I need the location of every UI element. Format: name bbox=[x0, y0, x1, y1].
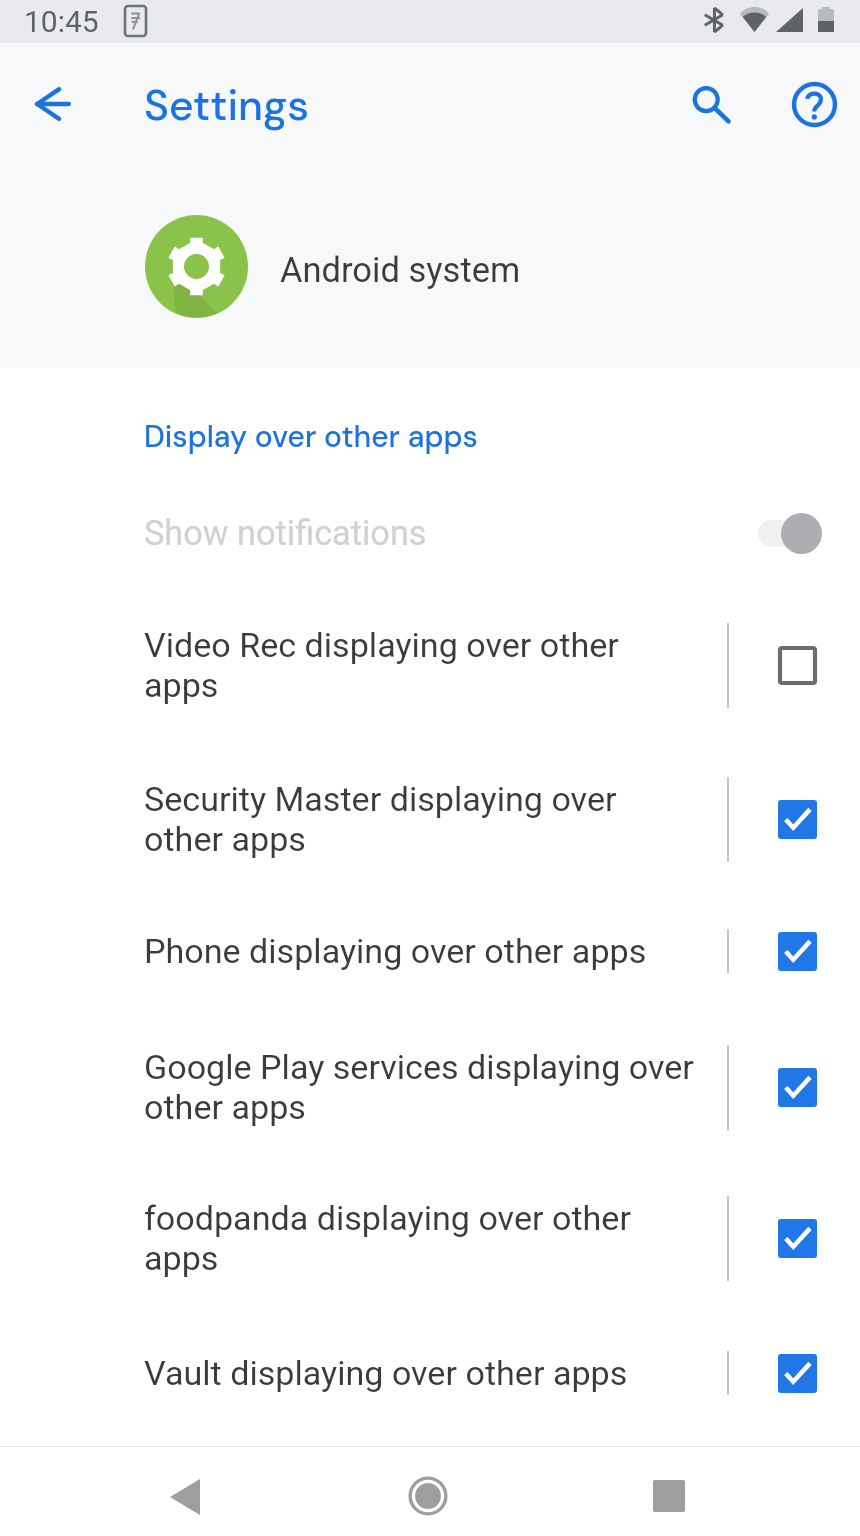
button[interactable]: Display over other apps bbox=[144, 417, 478, 456]
button[interactable]: Google Play services displaying over oth… bbox=[0, 1022, 860, 1152]
staticText: Phone displaying over other apps bbox=[144, 931, 647, 971]
button[interactable]: Back bbox=[142, 1454, 228, 1536]
staticText: Google Play services displaying over oth… bbox=[144, 1047, 694, 1127]
button[interactable]: Home bbox=[385, 1453, 471, 1536]
staticText: Vault displaying over other apps bbox=[144, 1353, 628, 1393]
button[interactable]: Security Master displaying over other ap… bbox=[0, 754, 860, 884]
button[interactable]: Recent apps bbox=[626, 1453, 712, 1536]
button[interactable]: Phone displaying over other apps bbox=[0, 908, 860, 994]
staticText: Settings bbox=[144, 78, 309, 133]
button[interactable]: Back bbox=[5, 56, 101, 152]
button[interactable]: Vault displaying over other apps bbox=[0, 1330, 860, 1416]
staticText: Android system bbox=[280, 250, 521, 290]
button[interactable]: foodpanda displaying over other apps bbox=[0, 1173, 860, 1303]
staticText: 10:45 bbox=[24, 4, 99, 39]
button[interactable]: Show notifications bbox=[0, 490, 860, 576]
staticText: Video Rec displaying over other apps bbox=[144, 625, 694, 705]
staticText: Security Master displaying over other ap… bbox=[144, 779, 694, 859]
button[interactable]: Help bbox=[766, 56, 860, 152]
button[interactable]: Search bbox=[662, 56, 758, 152]
button[interactable]: Video Rec displaying over other apps bbox=[0, 600, 860, 730]
staticText: foodpanda displaying over other apps bbox=[144, 1198, 694, 1278]
staticText: Show notifications bbox=[144, 513, 427, 553]
